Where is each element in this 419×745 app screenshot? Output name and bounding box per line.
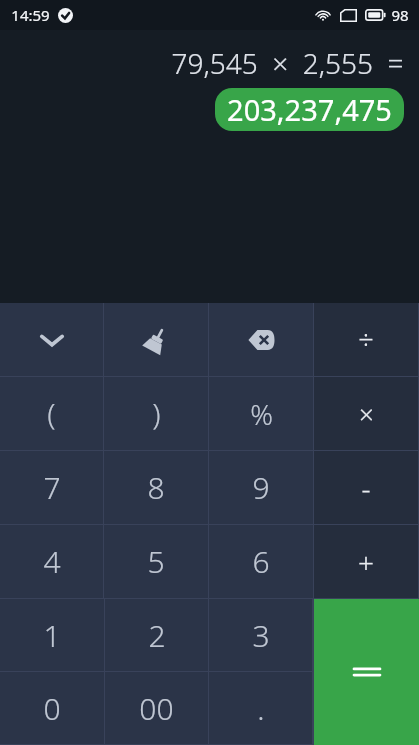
staticText: 79,545 × 2,555 = [171, 44, 404, 82]
button[interactable]: - [314, 451, 418, 524]
button[interactable]: 0 [0, 672, 104, 744]
button[interactable]: 00 [105, 672, 208, 744]
staticText: ÷ [358, 321, 374, 358]
staticText: ( [47, 393, 56, 434]
staticText: - [361, 469, 371, 507]
button[interactable]: % [209, 377, 313, 450]
button[interactable]: 2 [105, 599, 208, 671]
staticText: 203,237,475 [227, 90, 392, 129]
staticText: . [257, 688, 265, 729]
staticText: % [250, 395, 273, 433]
button[interactable]: ÷ [314, 303, 418, 376]
button[interactable]: 8 [104, 451, 208, 524]
button[interactable]: 3 [209, 599, 312, 671]
staticText: 98 [391, 5, 409, 25]
button[interactable]: 1 [0, 599, 104, 671]
staticText: 3 [252, 615, 270, 656]
staticText: × [359, 396, 374, 431]
staticText: 14:59 [11, 5, 50, 25]
button[interactable]: 5 [104, 525, 208, 598]
staticText: 1 [43, 615, 61, 656]
staticText: 7 [43, 467, 61, 508]
button[interactable]: Backspace [209, 303, 313, 376]
button[interactable]: 7 [0, 451, 103, 524]
button[interactable]: . [209, 672, 312, 744]
staticText: 4 [43, 541, 61, 582]
staticText: 6 [252, 541, 270, 582]
button[interactable]: ( [0, 377, 103, 450]
button[interactable]: Clear all [104, 303, 208, 376]
button[interactable]: ) [104, 377, 208, 450]
button[interactable]: 9 [209, 451, 313, 524]
staticText: ) [152, 393, 161, 434]
button[interactable]: 4 [0, 525, 103, 598]
staticText: + [358, 543, 374, 581]
staticText: 8 [147, 467, 165, 508]
staticText: 9 [252, 467, 270, 508]
staticText: 0 [43, 688, 61, 729]
button[interactable]: Collapse [0, 303, 103, 376]
button[interactable]: 6 [209, 525, 313, 598]
staticText: 5 [147, 541, 165, 582]
staticText: 2 [148, 615, 166, 656]
staticText: 00 [139, 688, 174, 729]
button[interactable]: × [314, 377, 418, 450]
button[interactable]: + [314, 525, 418, 598]
button[interactable]: Equals [314, 599, 419, 745]
